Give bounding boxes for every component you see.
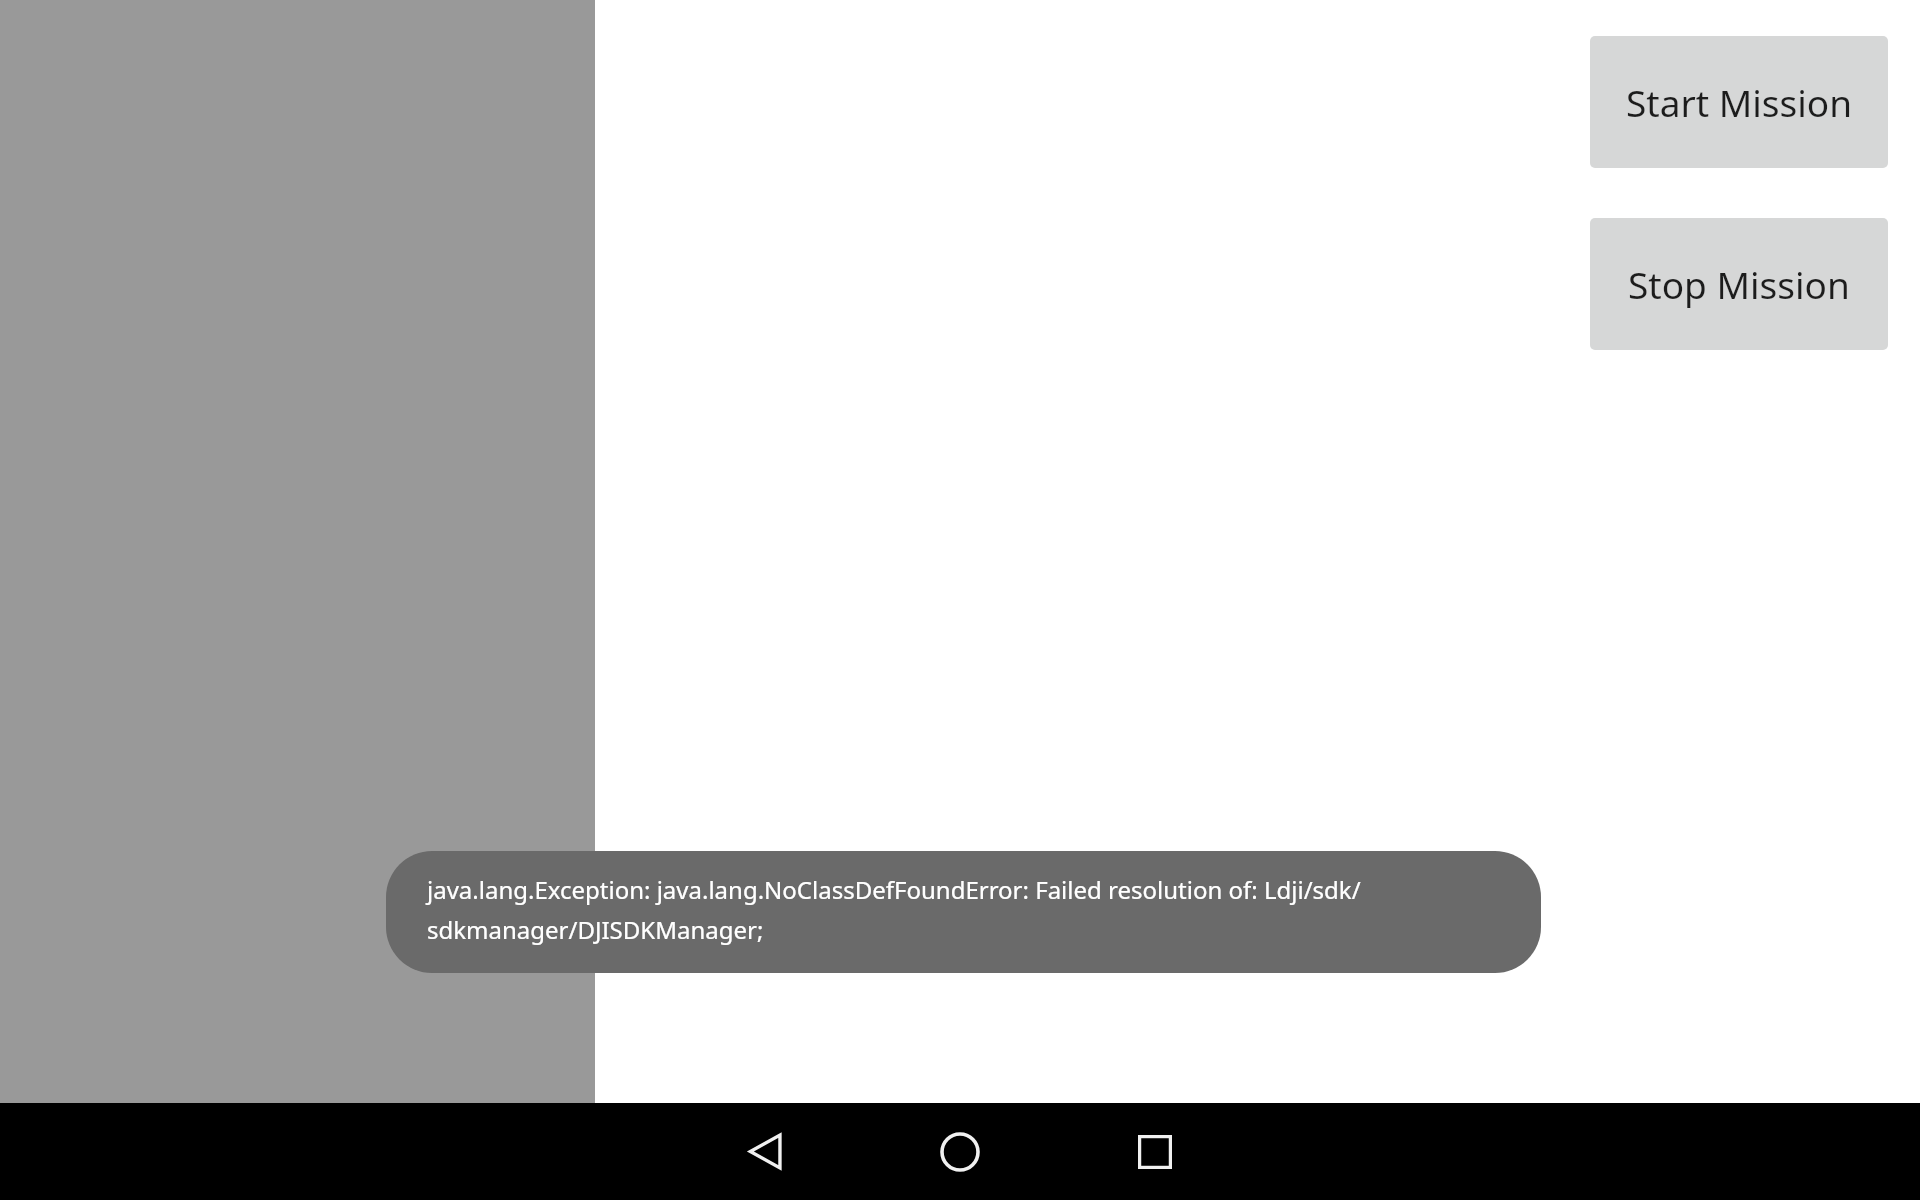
button[interactable]: Back [685,1103,845,1200]
staticText: Stop Mission [1628,259,1850,309]
staticText: Start Mission [1626,77,1853,127]
staticText: java.lang.Exception: java.lang.NoClassDe… [427,873,1499,946]
button[interactable]: Stop Mission [1590,218,1888,350]
button[interactable]: Recent apps [1075,1103,1235,1200]
button[interactable]: Start Mission [1590,36,1888,168]
button[interactable]: Home [880,1103,1040,1200]
